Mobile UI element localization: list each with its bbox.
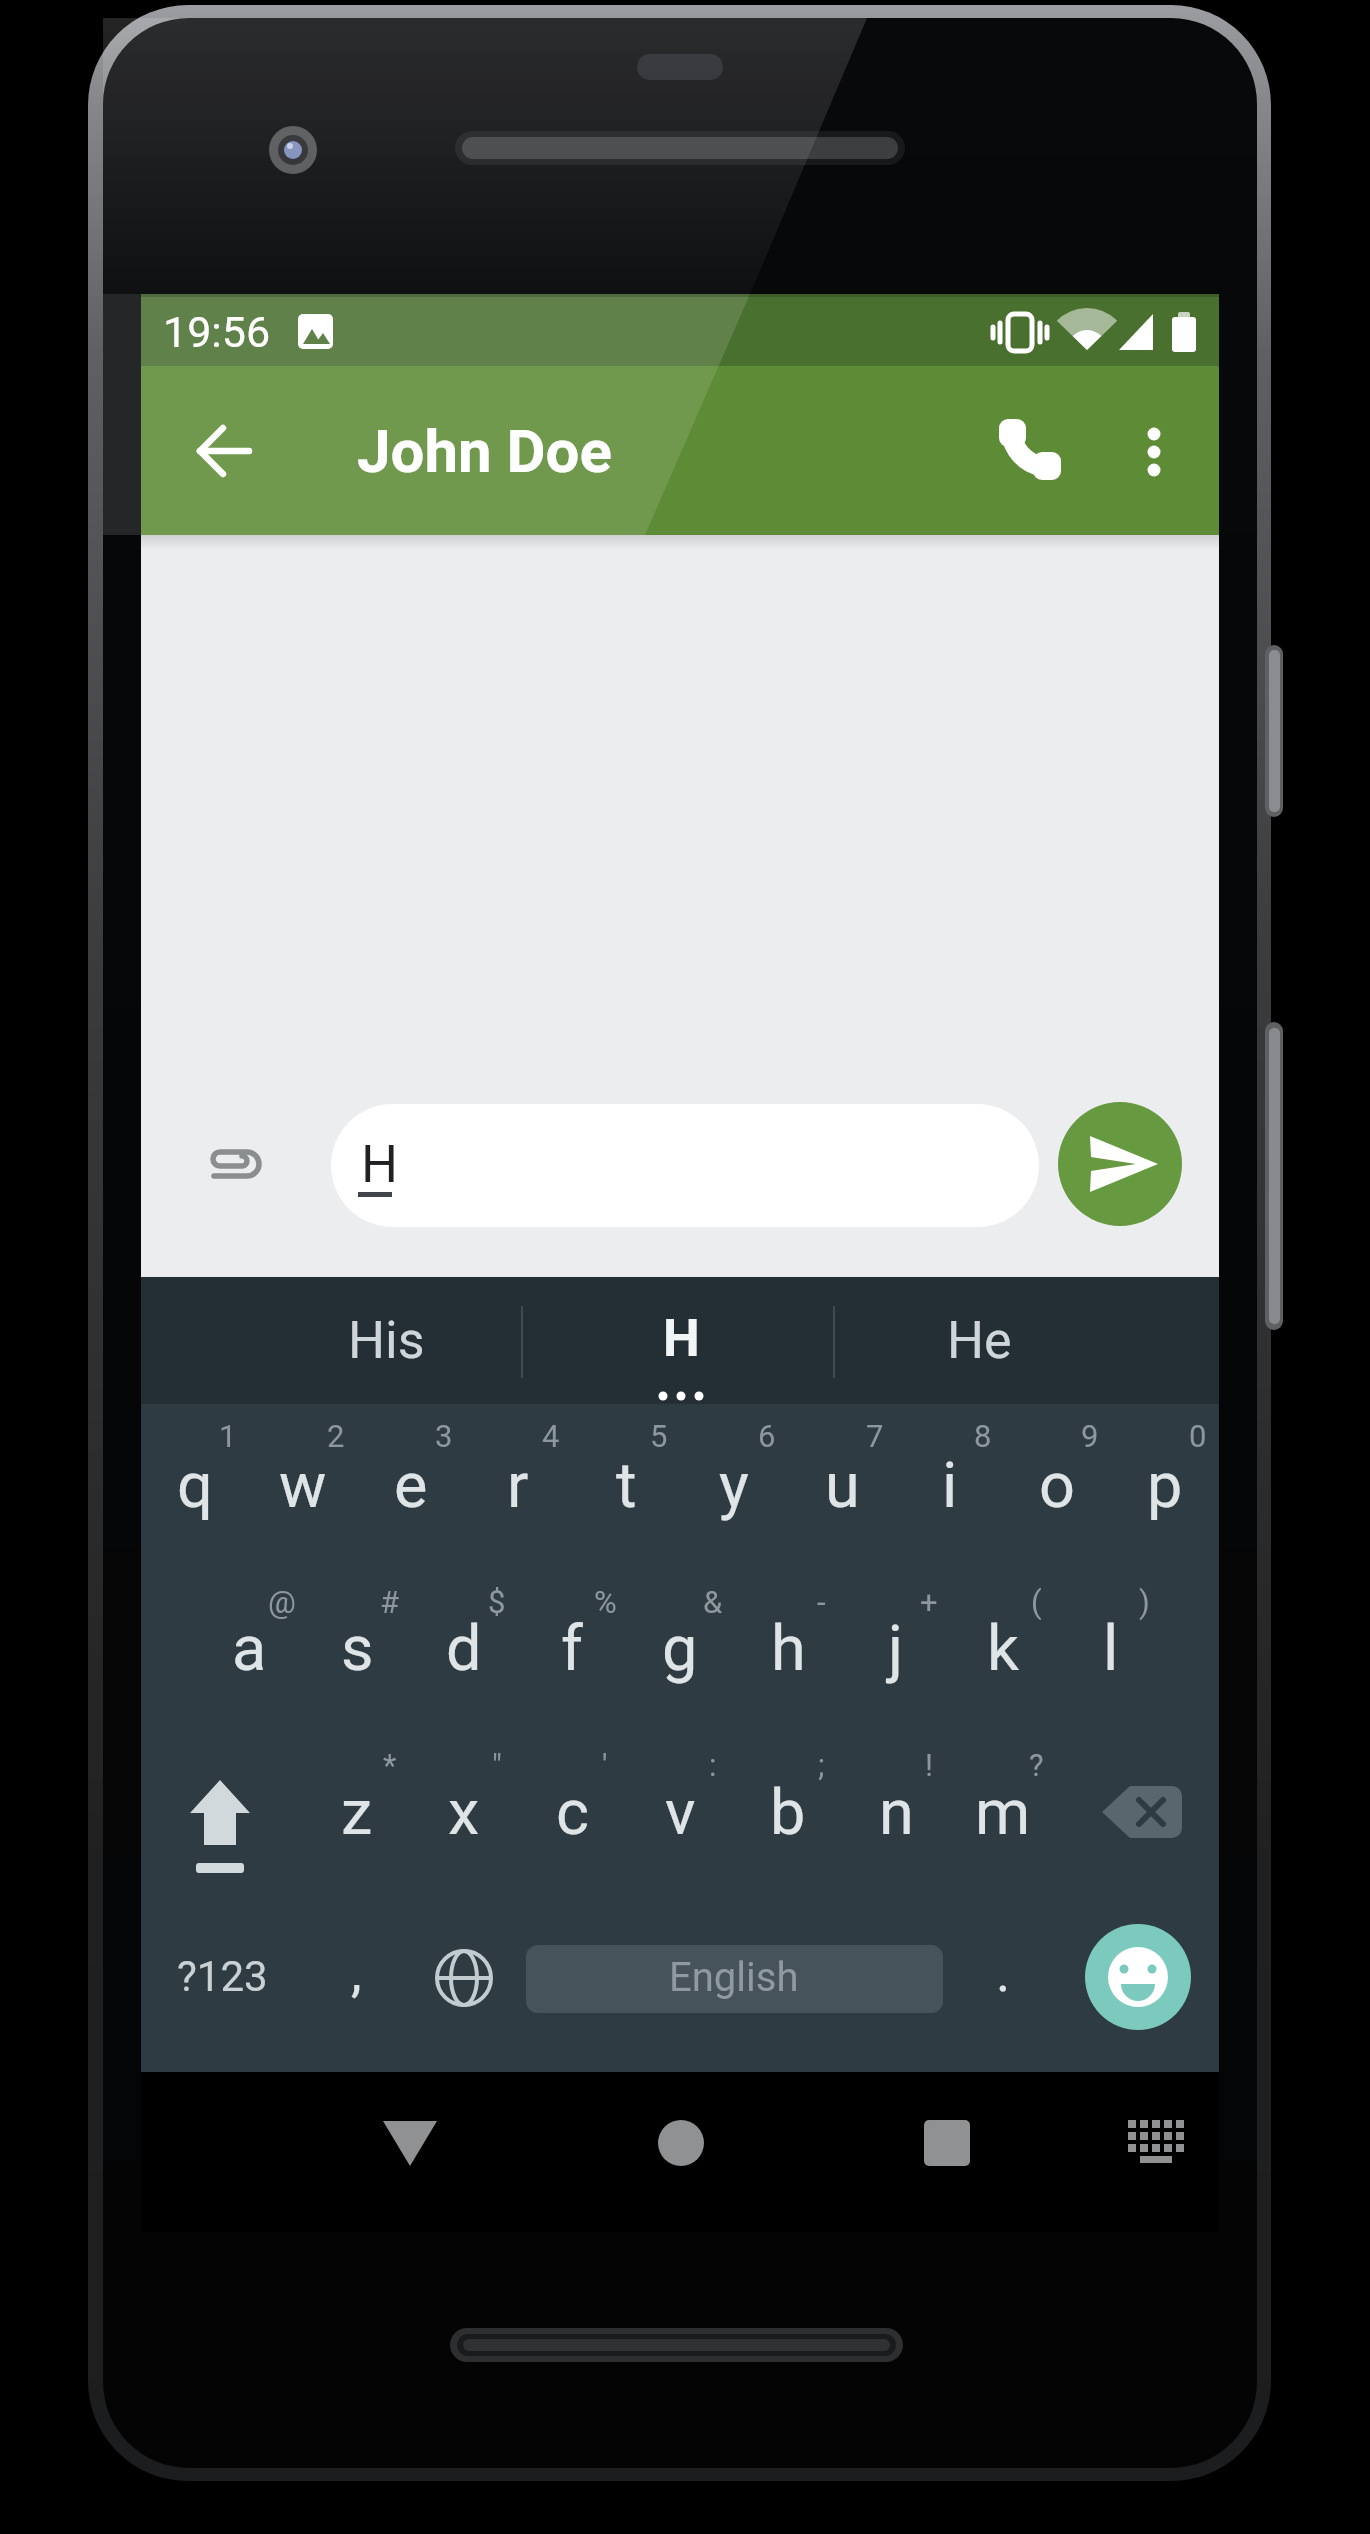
staticText: x: [448, 1776, 480, 1850]
staticText: 2: [327, 1418, 345, 1454]
button[interactable]: [141, 1731, 303, 1895]
staticText: r: [507, 1449, 529, 1523]
button[interactable]: [526, 1945, 943, 2013]
staticText: o: [1039, 1449, 1075, 1523]
button[interactable]: [950, 1895, 1058, 2058]
staticText: ;: [818, 1747, 825, 1783]
staticText: y: [719, 1449, 749, 1523]
button[interactable]: [176, 403, 272, 499]
staticText: $: [488, 1584, 506, 1620]
staticText: l: [1103, 1612, 1119, 1686]
staticText: 3: [435, 1418, 453, 1454]
button[interactable]: [303, 1731, 411, 1895]
button[interactable]: [788, 1404, 896, 1568]
button[interactable]: [734, 1731, 842, 1895]
button[interactable]: [734, 1568, 842, 1731]
staticText: 5: [650, 1418, 668, 1454]
button[interactable]: [141, 1277, 522, 1404]
staticText: :: [709, 1747, 717, 1783]
button[interactable]: [303, 1568, 411, 1731]
staticText: i: [942, 1449, 958, 1523]
button[interactable]: [950, 1731, 1058, 1895]
button[interactable]: [979, 403, 1075, 499]
staticText: (: [1031, 1584, 1042, 1620]
staticText: +: [920, 1584, 938, 1620]
staticText: s: [341, 1612, 374, 1686]
staticText: 4: [542, 1418, 560, 1454]
staticText: n: [879, 1776, 914, 1850]
staticText: h: [771, 1612, 806, 1686]
button[interactable]: [1003, 1404, 1111, 1568]
button[interactable]: [194, 1124, 274, 1204]
staticText: ,: [351, 1941, 362, 2004]
staticText: 0: [1189, 1418, 1207, 1454]
button[interactable]: [411, 1895, 519, 2058]
button[interactable]: [680, 1404, 788, 1568]
button[interactable]: [249, 1404, 357, 1568]
staticText: 6: [758, 1418, 776, 1454]
staticText: ?123: [177, 1952, 268, 2001]
staticText: u: [825, 1449, 860, 1523]
button[interactable]: [411, 1731, 519, 1895]
button[interactable]: [331, 1104, 1039, 1227]
staticText: v: [665, 1776, 696, 1850]
button[interactable]: [411, 1568, 519, 1731]
button[interactable]: [1057, 1731, 1219, 1895]
button[interactable]: [631, 2093, 731, 2193]
button[interactable]: [522, 1277, 834, 1404]
button[interactable]: [141, 1895, 303, 2058]
staticText: e: [394, 1449, 428, 1523]
staticText: ": [492, 1747, 502, 1783]
staticText: *: [383, 1747, 397, 1783]
staticText: #: [380, 1584, 400, 1620]
button[interactable]: [141, 1404, 249, 1568]
button[interactable]: [360, 2093, 460, 2193]
button[interactable]: [464, 1404, 572, 1568]
staticText: d: [446, 1612, 482, 1686]
button[interactable]: [518, 1895, 949, 2058]
button[interactable]: [897, 2093, 997, 2193]
button[interactable]: [1106, 403, 1202, 499]
staticText: @: [268, 1584, 296, 1620]
button[interactable]: [195, 1568, 303, 1731]
button[interactable]: [572, 1404, 680, 1568]
staticText: -: [817, 1584, 826, 1620]
button[interactable]: [1057, 1895, 1219, 2058]
staticText: b: [770, 1776, 806, 1850]
button[interactable]: [303, 1895, 411, 2058]
staticText: k: [987, 1612, 1019, 1686]
button[interactable]: [842, 1731, 950, 1895]
button[interactable]: [626, 1731, 734, 1895]
button[interactable]: [896, 1404, 1004, 1568]
button[interactable]: [357, 1404, 465, 1568]
staticText: English: [669, 1954, 799, 2001]
button[interactable]: [1104, 2093, 1204, 2193]
staticText: He: [947, 1310, 1012, 1371]
staticText: ): [1139, 1584, 1150, 1620]
staticText: &: [703, 1584, 723, 1620]
staticText: z: [341, 1776, 373, 1850]
staticText: p: [1147, 1449, 1183, 1523]
staticText: H: [361, 1134, 399, 1195]
button[interactable]: [1111, 1404, 1219, 1568]
staticText: %: [594, 1584, 617, 1620]
staticText: 9: [1081, 1418, 1099, 1454]
button[interactable]: [1058, 1102, 1182, 1226]
staticText: a: [232, 1612, 267, 1686]
staticText: q: [177, 1449, 213, 1523]
staticText: j: [888, 1612, 904, 1686]
staticText: 8: [974, 1418, 992, 1454]
staticText: w: [279, 1449, 327, 1523]
staticText: H: [663, 1308, 700, 1369]
button[interactable]: [842, 1568, 950, 1731]
button[interactable]: [834, 1277, 1219, 1404]
button[interactable]: [950, 1568, 1058, 1731]
staticText: His: [348, 1310, 425, 1371]
staticText: .: [996, 1941, 1011, 2004]
staticText: g: [662, 1612, 698, 1686]
button[interactable]: [1057, 1568, 1165, 1731]
button[interactable]: [626, 1568, 734, 1731]
button[interactable]: [518, 1731, 626, 1895]
staticText: m: [975, 1776, 1031, 1850]
button[interactable]: [518, 1568, 626, 1731]
